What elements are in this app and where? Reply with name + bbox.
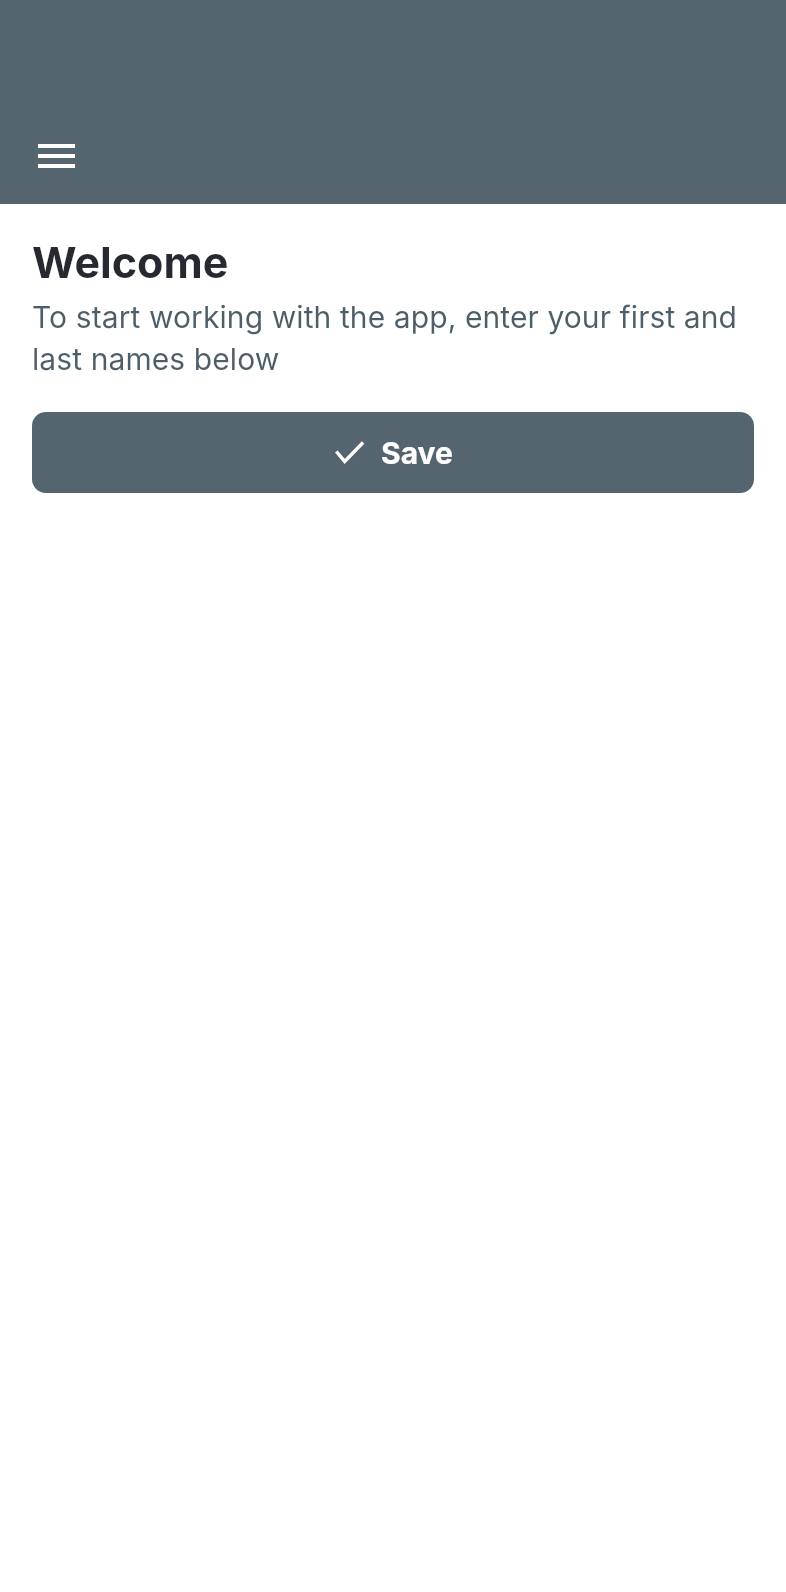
staticText: Welcome [32,236,229,288]
staticText: Save [381,435,453,471]
button[interactable]: Open navigation menu [18,124,94,188]
button[interactable]: Save [32,412,754,493]
staticText: To start working with the app, enter you… [32,294,756,378]
